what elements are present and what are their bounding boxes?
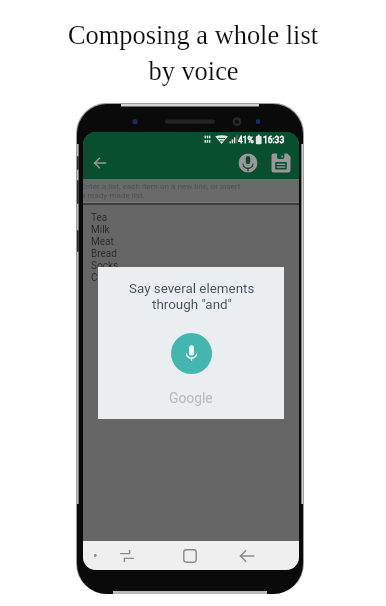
button[interactable]: Microphone [171,333,212,374]
staticText: Say several elements [129,281,255,297]
staticText: Meat [91,236,114,248]
button[interactable]: Home [178,544,202,568]
staticText: Composing a whole list [68,20,318,49]
staticText: Cheese [91,272,125,284]
staticText: Socks [91,260,119,272]
staticText: by voice [148,56,239,85]
staticText: Bread [91,248,117,260]
staticText: a ready-made list. [83,190,145,199]
staticText: Milk [91,224,110,236]
staticText: Tea [91,212,108,224]
staticText: Enter a list, each item on a new line, o… [83,181,241,190]
button[interactable]: Recent apps [115,544,139,568]
button[interactable]: Back [89,152,111,174]
staticText: through "and" [152,297,232,313]
staticText: 41% [238,135,254,145]
staticText: 16:33 [263,135,285,145]
button[interactable]: Voice input [237,152,259,174]
button[interactable]: Save [270,152,292,174]
staticText: Google [169,390,213,406]
button[interactable]: Back [235,544,259,568]
